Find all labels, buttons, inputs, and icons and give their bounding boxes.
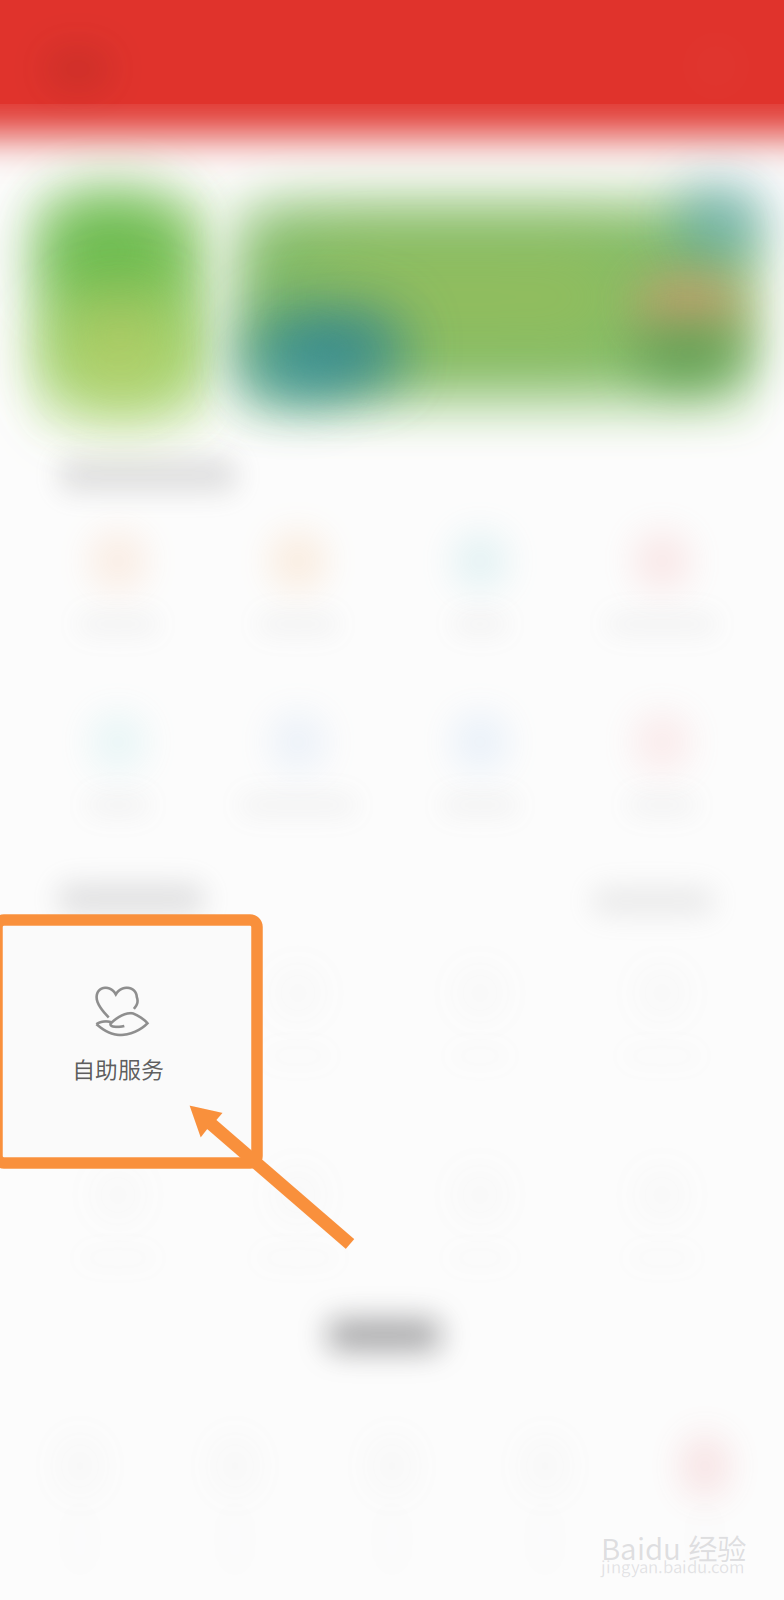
staticText: 自助服务 (72, 1052, 164, 1085)
staticText: jingyan.baidu.com (601, 1554, 744, 1578)
staticText: Baidu 经验 (601, 1526, 746, 1568)
button[interactable]: 自助服务 (0, 924, 252, 1162)
